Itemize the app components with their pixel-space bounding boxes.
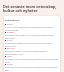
staticText: Politik [7,63,13,66]
button[interactable]: Politik [5,63,59,71]
staticText: Valet narmar sig och partierna skarper t… [5,66,59,71]
button[interactable]: Kultur [5,39,59,47]
staticText: Ekonomin vaxer trots oro pa den globala … [5,50,59,55]
staticText: Halsa [7,55,12,58]
staticText: Nya ron om klimatets stora paverkan pa h… [5,26,59,31]
button[interactable]: Halsa [5,55,59,63]
button[interactable]: Rymden [5,31,59,39]
button[interactable]: Klimat [5,23,59,31]
staticText: Ekonomi [7,47,15,50]
staticText: Forskare hittar spar av liv pa en avlags… [5,34,59,39]
staticText: Det senaste inom vetenskap, kultur och n… [3,4,60,13]
staticText: Klimat [7,23,13,26]
staticText: Rymden [7,31,15,34]
staticText: Kultur [7,39,13,42]
staticText: Senaste nytt [5,19,20,22]
staticText: Kulturpriset delas ut till arets basta f… [5,42,59,47]
button[interactable]: Ekonomi [5,47,59,55]
staticText: Ny teknik kan revolutionera sjukvarden i… [5,58,59,63]
